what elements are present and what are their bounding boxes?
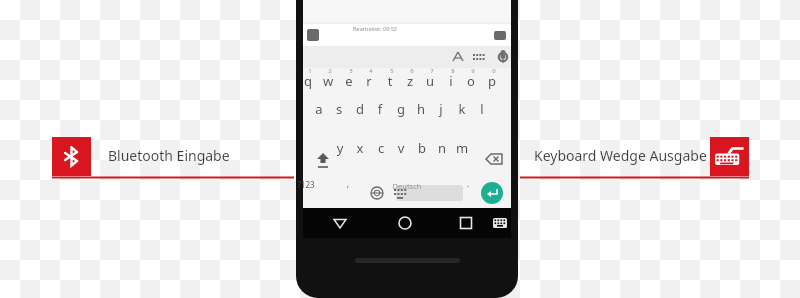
- staticText: 7: [410, 67, 454, 80]
- staticText: ?123: [284, 179, 328, 197]
- staticText: k: [440, 100, 484, 129]
- staticText: a: [297, 100, 341, 129]
- staticText: h: [399, 100, 443, 129]
- staticText: s: [317, 100, 361, 129]
- staticText: .: [446, 177, 490, 197]
- button[interactable]: Bluetooth Eingabe: [52, 137, 91, 176]
- staticText: f: [358, 100, 402, 129]
- staticText: 4: [349, 67, 393, 80]
- staticText: u: [408, 72, 452, 101]
- staticText: r: [347, 72, 391, 101]
- staticText: n: [420, 139, 464, 168]
- staticText: 2: [308, 67, 352, 80]
- staticText: Keyboard Wedge Ausgabe: [534, 146, 707, 165]
- staticText: 6: [390, 67, 434, 80]
- staticText: m: [440, 139, 484, 168]
- staticText: 5: [370, 67, 414, 80]
- staticText: l: [460, 100, 504, 129]
- button[interactable]: Bluetooth Eingabe: [108, 146, 258, 168]
- staticText: c: [359, 139, 403, 168]
- staticText: t: [368, 72, 412, 101]
- staticText: p: [470, 72, 514, 101]
- staticText: 0: [472, 67, 516, 80]
- staticText: o: [449, 72, 493, 101]
- staticText: ,: [326, 177, 370, 197]
- staticText: w: [306, 72, 350, 101]
- staticText: 8: [431, 67, 475, 80]
- staticText: i: [429, 72, 473, 101]
- staticText: z: [388, 72, 432, 101]
- staticText: 9: [451, 67, 495, 80]
- button[interactable]: Keyboard Wedge Ausgabe: [710, 137, 749, 176]
- staticText: Deutsch: [385, 181, 429, 198]
- staticText: Bluetooth Eingabe: [108, 146, 230, 165]
- staticText: b: [400, 139, 444, 168]
- button[interactable]: Keyboard Wedge Ausgabe: [534, 146, 710, 168]
- staticText: q: [286, 72, 330, 101]
- staticText: y: [318, 139, 362, 168]
- staticText: 1: [288, 67, 332, 80]
- staticText: j: [419, 100, 463, 129]
- staticText: e: [327, 72, 371, 101]
- staticText: Bearbeitet: 09:52: [353, 25, 397, 37]
- staticText: v: [379, 139, 423, 168]
- staticText: x: [338, 139, 382, 168]
- staticText: 3: [329, 67, 373, 80]
- staticText: g: [379, 100, 423, 129]
- staticText: d: [338, 100, 382, 129]
